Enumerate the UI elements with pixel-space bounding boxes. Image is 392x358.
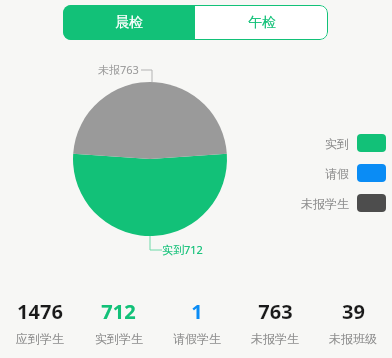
staticText: 1476 <box>17 298 63 325</box>
button[interactable]: 未报学生 <box>300 193 386 213</box>
staticText: 晨检 <box>115 14 143 32</box>
button[interactable]: 晨检 <box>63 5 195 40</box>
staticText: 请假 <box>325 166 349 181</box>
button[interactable]: 1 <box>158 298 236 348</box>
button[interactable]: 请假 <box>300 163 386 183</box>
staticText: 实到学生 <box>95 331 143 346</box>
staticText: 未报763 <box>98 62 139 77</box>
button[interactable]: 1476 <box>0 298 79 348</box>
staticText: 763 <box>258 298 293 325</box>
button[interactable]: 712 <box>79 298 158 348</box>
staticText: 39 <box>342 298 365 325</box>
staticText: 未报班级 <box>329 331 377 346</box>
staticText: 712 <box>101 298 136 325</box>
staticText: 未报学生 <box>251 331 299 346</box>
button[interactable]: 实到 <box>300 133 386 153</box>
button[interactable]: 39 <box>314 298 392 348</box>
button[interactable]: 763 <box>236 298 314 348</box>
staticText: 午检 <box>248 14 276 32</box>
staticText: 实到 <box>325 136 349 151</box>
staticText: 1 <box>191 298 203 325</box>
staticText: 应到学生 <box>16 331 64 346</box>
staticText: 请假学生 <box>173 331 221 346</box>
staticText: 未报学生 <box>301 196 349 211</box>
staticText: 实到712 <box>162 242 203 257</box>
button[interactable]: 午检 <box>195 5 328 40</box>
